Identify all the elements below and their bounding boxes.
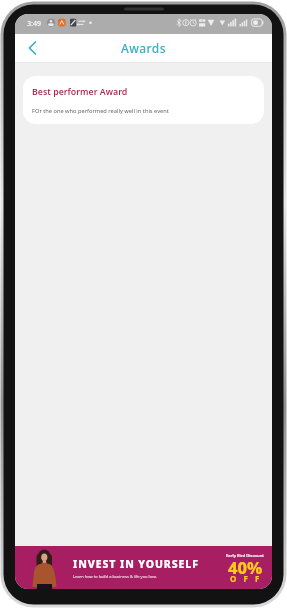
button[interactable] [19,34,47,62]
button[interactable]: INVEST IN YOURSELF [15,546,272,589]
button[interactable]: Best performer Award [23,76,264,124]
staticText: Early Bird Discount [226,553,264,559]
staticText: Learn how to build a business & life you… [73,574,158,579]
staticText: Best performer Award [32,86,128,98]
staticText: FOr the one who performed really well in… [32,107,169,115]
staticText: Awards [121,40,166,56]
staticText: O F F [230,573,262,584]
staticText: 40% [228,556,263,578]
staticText: INVEST IN YOURSELF [73,557,199,571]
staticText: 3:49 [27,19,41,29]
